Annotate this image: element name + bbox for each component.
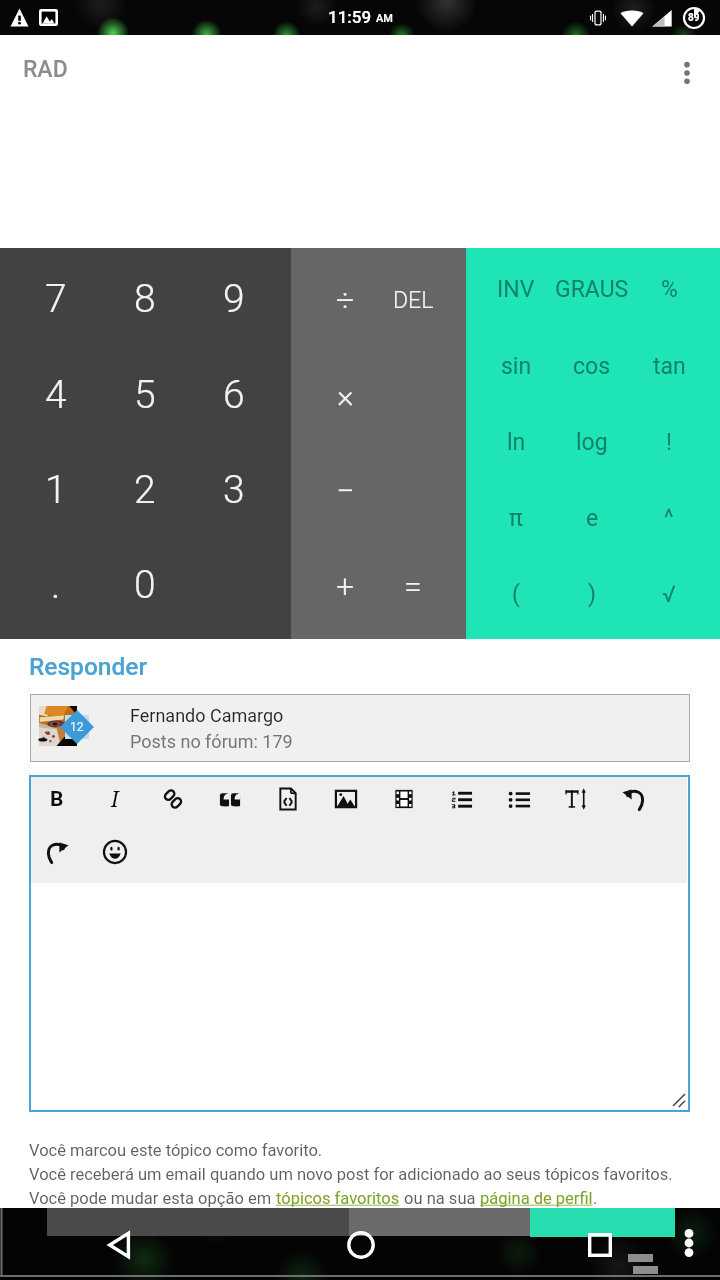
button[interactable]: ÷	[298, 253, 392, 347]
staticText: Você marcou este tópico como favorito.	[29, 1141, 323, 1160]
staticText: Você pode mudar esta opção em	[29, 1189, 276, 1208]
staticText: 7	[45, 276, 67, 322]
staticText: AM	[376, 12, 393, 25]
staticText: ÷	[336, 281, 355, 319]
staticText: 89	[688, 12, 700, 24]
staticText: 5	[134, 372, 156, 418]
button[interactable]: 8	[98, 252, 192, 346]
staticText: 3	[223, 467, 245, 513]
staticText: 8	[134, 276, 156, 322]
staticText: GRAUS	[555, 276, 629, 303]
button[interactable]: Font size	[551, 777, 603, 821]
staticText: +	[336, 567, 355, 605]
staticText: I	[111, 785, 119, 814]
button[interactable]: .	[9, 538, 103, 632]
button[interactable]: ln	[476, 405, 556, 479]
button[interactable]: √	[629, 557, 709, 631]
button[interactable]: sin	[476, 329, 556, 403]
button[interactable]: e	[552, 481, 632, 555]
button[interactable]: Undo	[608, 777, 660, 821]
button[interactable]: 1	[9, 443, 103, 537]
button[interactable]: 2	[98, 443, 192, 537]
button[interactable]: Bold	[31, 777, 83, 821]
button[interactable]: Recents	[576, 1221, 624, 1269]
staticText: .	[51, 562, 61, 608]
button[interactable]: (	[476, 557, 556, 631]
staticText: !	[666, 429, 672, 456]
button[interactable]: GRAUS	[552, 252, 632, 326]
button[interactable]: 4	[9, 348, 103, 442]
staticText: ^	[664, 505, 674, 532]
staticText: %	[661, 276, 678, 303]
staticText: ou na sua	[400, 1189, 480, 1208]
staticText: 0	[134, 562, 156, 608]
button[interactable]: !	[629, 405, 709, 479]
button[interactable]: Bullet list	[493, 777, 545, 821]
button[interactable]: %	[629, 252, 709, 326]
staticText: Você receberá um email quando um novo po…	[29, 1165, 673, 1184]
staticText: 1	[45, 467, 67, 513]
button[interactable]: Numbered list	[435, 777, 487, 821]
button[interactable]: Emoji	[89, 830, 141, 874]
staticText: página de perfil	[480, 1189, 593, 1208]
staticText: INV	[497, 276, 535, 303]
button[interactable]: log	[552, 405, 632, 479]
staticText: 12	[70, 720, 84, 734]
staticText: e	[586, 505, 599, 532]
staticText: 6	[223, 372, 245, 418]
button[interactable]: 5	[98, 348, 192, 442]
staticText: π	[509, 505, 523, 532]
button[interactable]: Back	[96, 1221, 144, 1269]
staticText: ×	[337, 377, 354, 415]
button[interactable]: cos	[552, 329, 632, 403]
staticText: Posts no fórum: 179	[130, 731, 293, 752]
button[interactable]: )	[552, 557, 632, 631]
button[interactable]: INV	[476, 252, 556, 326]
staticText: DEL	[393, 287, 434, 314]
button[interactable]: =	[366, 539, 460, 633]
button[interactable]: Video	[378, 777, 430, 821]
staticText: Fernando Camargo	[130, 705, 284, 726]
button[interactable]: Code	[262, 777, 314, 821]
staticText: cos	[573, 353, 611, 380]
button[interactable]: More options	[663, 49, 711, 97]
staticText: RAD	[23, 56, 68, 83]
button[interactable]: Image	[320, 777, 372, 821]
button[interactable]: Home	[337, 1221, 385, 1269]
button[interactable]: Redo	[31, 830, 83, 874]
button[interactable]: DEL	[366, 253, 460, 347]
staticText: .	[593, 1189, 598, 1208]
button[interactable]: 9	[187, 252, 281, 346]
staticText: ln	[507, 429, 526, 456]
button[interactable]: 0	[98, 538, 192, 632]
staticText: =	[404, 567, 422, 605]
staticText: log	[576, 429, 608, 456]
button[interactable]: ×	[298, 349, 392, 443]
staticText: )	[588, 581, 597, 608]
staticText: B	[50, 787, 64, 812]
staticText: Responder	[29, 652, 148, 681]
staticText: −	[336, 472, 355, 510]
staticText: sin	[501, 353, 532, 380]
button[interactable]: Quote	[204, 777, 256, 821]
staticText: 9	[223, 276, 245, 322]
button[interactable]: 7	[9, 252, 103, 346]
button[interactable]: 3	[187, 443, 281, 537]
staticText: 2	[134, 467, 156, 513]
button[interactable]: ^	[629, 481, 709, 555]
button[interactable]: +	[298, 539, 392, 633]
button[interactable]: Link	[147, 777, 199, 821]
button[interactable]: −	[298, 444, 392, 538]
staticText: tan	[653, 353, 686, 380]
staticText: (	[512, 581, 520, 608]
button[interactable]: Italic	[89, 777, 141, 821]
button[interactable]: 6	[187, 348, 281, 442]
button[interactable]: Menu	[668, 1220, 710, 1264]
staticText: 4	[45, 372, 67, 418]
button[interactable]: tan	[629, 329, 709, 403]
staticText: √	[662, 581, 676, 608]
button[interactable]: π	[476, 481, 556, 555]
staticText: tópicos favoritos	[276, 1189, 400, 1208]
button[interactable]: 12	[30, 694, 690, 762]
staticText: 11:59	[328, 7, 372, 27]
